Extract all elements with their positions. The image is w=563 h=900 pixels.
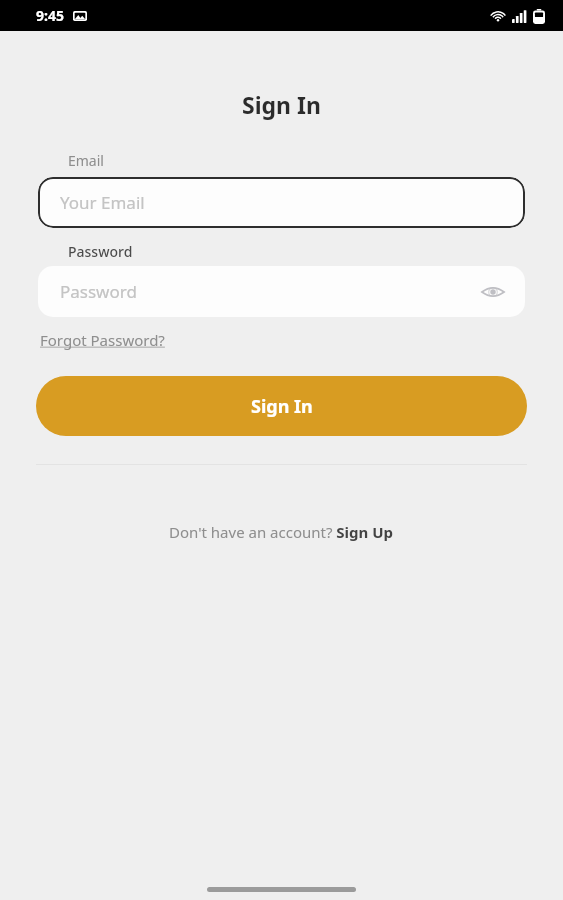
staticText: Don't have an account? Sign Up — [169, 522, 394, 542]
button[interactable]: Forgot Password? — [40, 330, 165, 350]
button[interactable]: Show password — [474, 273, 512, 311]
staticText: Email — [68, 151, 104, 170]
staticText: Sign In — [251, 394, 313, 419]
staticText: Your Email — [60, 191, 145, 214]
button[interactable]: Sign In — [36, 376, 527, 436]
staticText: Password — [68, 242, 133, 261]
staticText: Forgot Password? — [40, 330, 165, 350]
staticText: 9:45 — [36, 6, 64, 25]
button[interactable]: Password — [38, 266, 525, 317]
button[interactable]: Don't have an account? Sign Up — [169, 522, 394, 542]
button[interactable]: Your Email — [38, 177, 525, 228]
staticText: Sign In — [242, 89, 321, 120]
staticText: Password — [60, 280, 137, 303]
